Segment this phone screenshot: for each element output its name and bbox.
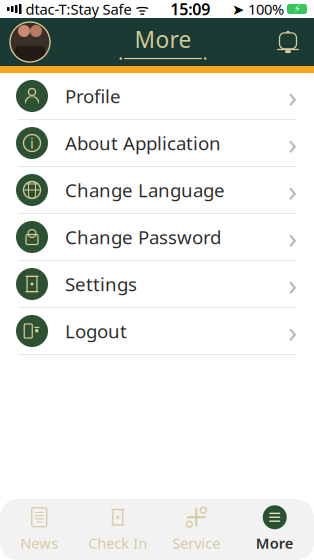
staticText: › [288,123,297,162]
staticText: Settings [65,272,137,296]
staticText: ᯤ [131,0,148,19]
button[interactable]: Logout [0,308,314,355]
button[interactable]: News [0,501,78,557]
staticText: More [256,533,294,553]
staticText: ➤ 100% [232,0,284,19]
staticText: › [288,217,297,256]
staticText: Logout [65,319,127,343]
staticText: i [30,133,34,153]
staticText: › [288,170,297,209]
button[interactable]: Notifications [276,30,314,54]
staticText: Check In [88,533,147,553]
button[interactable]: Service [157,501,235,557]
staticText: Service [172,533,220,553]
button[interactable]: Check In [78,501,157,557]
staticText: › [288,311,297,350]
button[interactable]: Profile photo [0,22,50,62]
staticText: › [288,264,297,303]
staticText: dtac-T:Stay Safe [21,0,131,19]
button[interactable]: Profile [0,73,314,120]
staticText: About Application [65,131,221,155]
staticText: ⚡︎ [293,3,300,15]
staticText: More [134,24,191,54]
staticText: Change Language [65,178,225,202]
button[interactable]: Change Language [0,167,314,214]
staticText: 15:09 [170,0,210,20]
staticText: › [288,76,297,115]
staticText: Profile [65,84,121,108]
staticText: Change Password [65,225,221,249]
button[interactable]: Change Password [0,214,314,261]
button[interactable]: More [235,501,314,557]
button[interactable]: i [0,120,314,167]
button[interactable]: Settings [0,261,314,308]
staticText: News [20,533,58,553]
